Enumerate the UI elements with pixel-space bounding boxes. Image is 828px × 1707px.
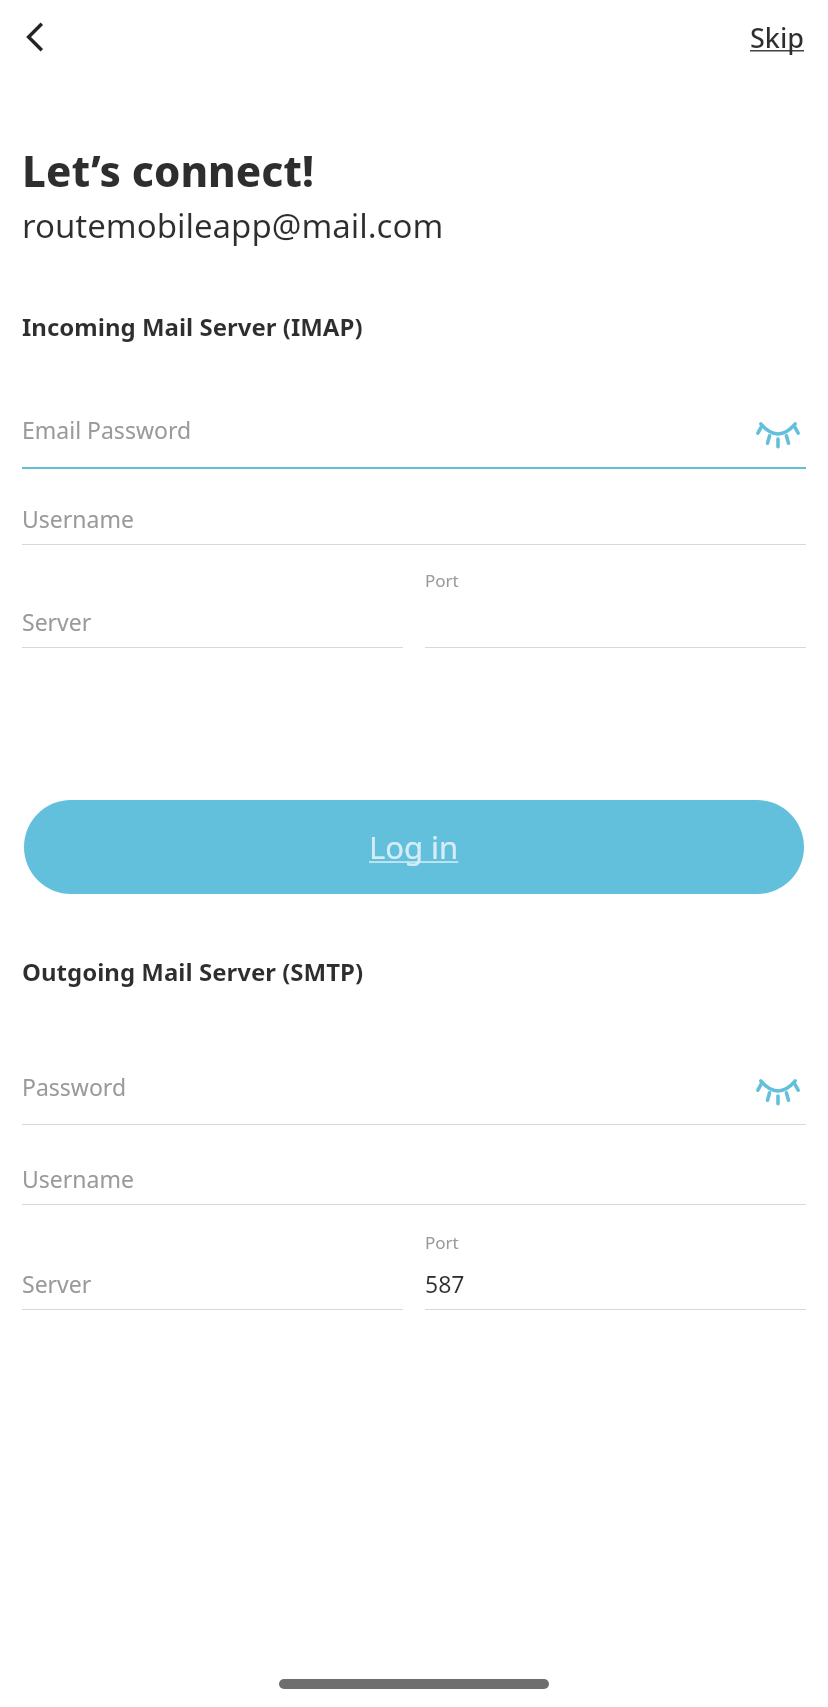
staticText: Password — [22, 1071, 127, 1102]
staticText: Incoming Mail Server (IMAP) — [22, 310, 363, 343]
staticText: 587 — [425, 1268, 465, 1299]
button[interactable]: Password — [22, 1058, 806, 1125]
button[interactable]: Show password — [750, 1058, 806, 1114]
button[interactable]: Show password — [750, 401, 806, 457]
staticText: Server — [22, 1268, 92, 1299]
staticText: Outgoing Mail Server (SMTP) — [22, 955, 364, 988]
button[interactable]: Skip — [744, 13, 810, 62]
staticText: Port — [425, 1231, 459, 1254]
staticText: Email Password — [22, 414, 192, 445]
staticText: Port — [425, 569, 459, 592]
button[interactable]: Server — [22, 569, 403, 648]
button[interactable]: Port — [425, 569, 806, 648]
staticText: Username — [22, 1163, 134, 1194]
staticText: Skip — [750, 19, 804, 56]
button[interactable]: Back — [8, 8, 66, 66]
button[interactable]: Username — [22, 1163, 806, 1205]
staticText: Log in — [369, 826, 459, 868]
staticText: routemobileapp@mail.com — [22, 203, 444, 248]
staticText: Server — [22, 606, 92, 637]
staticText: Let’s connect! — [22, 142, 315, 199]
button[interactable]: Log in — [24, 800, 804, 894]
button[interactable]: Username — [22, 503, 806, 545]
button[interactable]: Server — [22, 1231, 403, 1310]
button[interactable]: Port — [425, 1231, 806, 1310]
button[interactable]: Email Password — [22, 401, 806, 469]
staticText: Username — [22, 503, 134, 534]
